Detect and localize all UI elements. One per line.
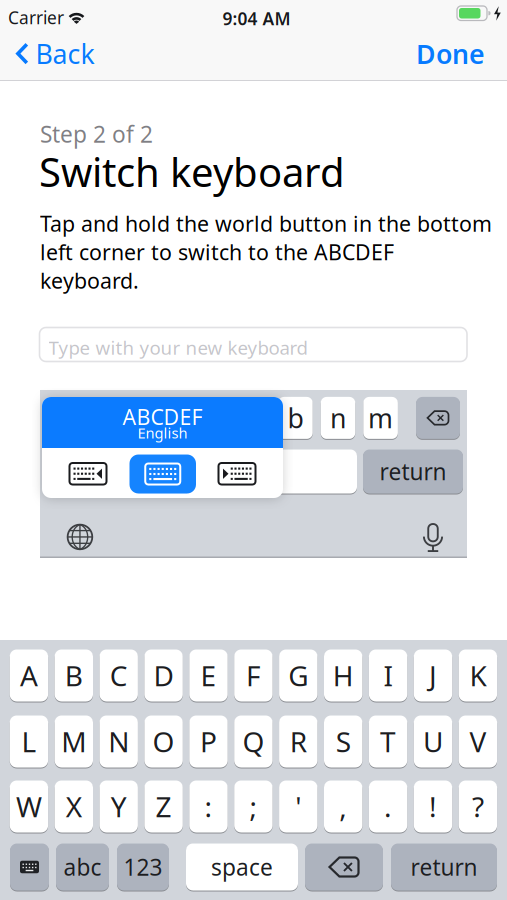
button[interactable]: I <box>369 649 407 702</box>
button[interactable]: J <box>414 649 452 702</box>
staticText: I <box>384 657 393 694</box>
button[interactable]: G <box>279 649 317 702</box>
button[interactable]: A <box>10 649 48 702</box>
button[interactable]: : <box>189 780 228 833</box>
staticText: Carrier <box>8 6 64 29</box>
button[interactable]: Next keyboard <box>67 524 93 550</box>
button[interactable]: Dictate <box>422 524 443 552</box>
staticText: L <box>21 723 36 760</box>
staticText: ' <box>295 788 301 825</box>
staticText: G <box>288 657 308 694</box>
button[interactable]: M <box>55 715 93 768</box>
staticText: F <box>246 657 261 694</box>
button[interactable]: Keyboard layouts <box>10 843 49 891</box>
button[interactable]: Done <box>416 36 485 71</box>
button[interactable]: Delete <box>305 843 383 891</box>
staticText: B <box>65 657 83 694</box>
button[interactable]: R <box>279 715 317 768</box>
staticText: Back <box>35 36 94 71</box>
staticText: R <box>290 723 307 760</box>
staticText: A <box>20 657 38 694</box>
staticText: m <box>368 400 393 436</box>
staticText: Switch keyboard <box>39 145 345 198</box>
staticText: 123 <box>123 852 162 882</box>
button[interactable]: C <box>99 649 138 702</box>
button[interactable]: Back <box>16 36 94 71</box>
staticText: Type with your new keyboard <box>48 335 307 360</box>
button[interactable]: T <box>369 715 407 768</box>
staticText: Q <box>242 723 264 760</box>
staticText: b <box>287 400 303 436</box>
staticText: K <box>469 657 486 694</box>
button[interactable]: Space <box>110 449 357 494</box>
button[interactable]: Z <box>144 780 183 833</box>
button[interactable]: ! <box>414 780 452 833</box>
button[interactable]: E <box>189 649 228 702</box>
staticText: X <box>66 788 82 825</box>
button[interactable]: Keyboard <box>129 454 196 493</box>
staticText: return <box>410 852 477 882</box>
button[interactable]: ; <box>234 780 273 833</box>
button[interactable]: S <box>324 715 362 768</box>
staticText: Tap and hold the world button in the bot… <box>40 209 492 237</box>
staticText: space <box>211 852 273 882</box>
button[interactable]: U <box>414 715 452 768</box>
button[interactable]: space <box>186 843 298 891</box>
button[interactable]: Dock keyboard right <box>218 463 255 484</box>
button[interactable]: L <box>10 715 48 768</box>
button[interactable]: Q <box>234 715 273 768</box>
button[interactable]: b <box>278 396 313 439</box>
staticText: D <box>154 657 174 694</box>
staticText: C <box>110 657 128 694</box>
button[interactable]: return <box>391 843 497 891</box>
staticText: ? <box>472 788 484 825</box>
button[interactable]: . <box>369 780 407 833</box>
staticText: n <box>330 400 346 436</box>
button[interactable]: D <box>144 649 183 702</box>
button[interactable]: Delete <box>416 396 460 439</box>
button[interactable]: Y <box>99 780 138 833</box>
button[interactable]: n <box>321 396 355 439</box>
button[interactable]: H <box>324 649 362 702</box>
button[interactable]: 123 <box>117 843 169 891</box>
button[interactable]: N <box>99 715 138 768</box>
staticText: E <box>200 657 216 694</box>
staticText: ; <box>249 788 257 825</box>
button[interactable]: X <box>55 780 93 833</box>
button[interactable]: F <box>234 649 273 702</box>
staticText: T <box>380 723 396 760</box>
staticText: U <box>423 723 443 760</box>
button[interactable]: K <box>459 649 497 702</box>
staticText: W <box>16 788 42 825</box>
button[interactable]: return <box>363 449 463 494</box>
staticText: left corner to switch to the ABCDEF <box>40 238 394 266</box>
staticText: S <box>336 723 351 760</box>
staticText: ABCDEF <box>122 402 202 431</box>
button[interactable]: abc <box>56 843 109 891</box>
staticText: ! <box>429 788 437 825</box>
staticText: , <box>339 788 347 825</box>
button[interactable]: ? <box>459 780 497 833</box>
button[interactable]: O <box>144 715 183 768</box>
button[interactable]: ' <box>279 780 317 833</box>
staticText: return <box>379 456 446 486</box>
button[interactable]: , <box>324 780 362 833</box>
staticText: Y <box>111 788 127 825</box>
button[interactable]: W <box>10 780 48 833</box>
button[interactable]: Dock keyboard left <box>69 463 106 484</box>
staticText: Step 2 of 2 <box>40 119 153 149</box>
staticText: N <box>108 723 129 760</box>
staticText: English <box>137 423 187 442</box>
staticText: Done <box>416 36 485 71</box>
staticText: M <box>61 723 86 760</box>
button[interactable]: m <box>363 396 398 439</box>
button[interactable]: Type with your new keyboard <box>39 327 467 361</box>
button[interactable]: P <box>189 715 228 768</box>
button[interactable]: B <box>55 649 93 702</box>
staticText: V <box>469 723 486 760</box>
staticText: H <box>333 657 354 694</box>
button[interactable]: V <box>459 715 497 768</box>
staticText: O <box>153 723 175 760</box>
staticText: . <box>384 788 392 825</box>
staticText: 9:04 AM <box>222 7 290 30</box>
